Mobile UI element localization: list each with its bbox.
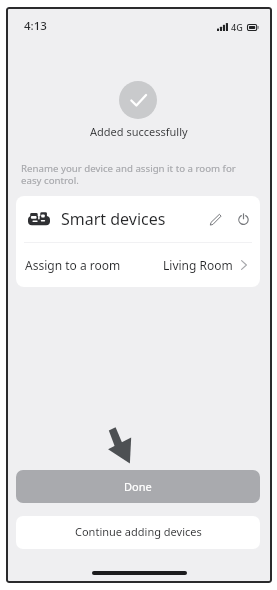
staticText: 4:13: [24, 18, 47, 34]
button[interactable]: Power: [234, 210, 252, 228]
button[interactable]: Assign to a room: [16, 243, 260, 287]
button[interactable]: Smart devices: [16, 196, 260, 242]
staticText: Living Room: [163, 257, 233, 273]
staticText: Done: [124, 479, 152, 494]
button[interactable]: Rename device: [206, 210, 224, 228]
button[interactable]: Continue adding devices: [16, 516, 260, 549]
staticText: Added successfully: [90, 124, 188, 139]
staticText: Rename your device and assign it to a ro…: [21, 162, 247, 186]
staticText: Continue adding devices: [75, 524, 202, 539]
staticText: 4G: [231, 21, 243, 33]
staticText: Assign to a room: [25, 257, 121, 273]
button[interactable]: Done: [16, 470, 260, 503]
staticText: Smart devices: [61, 208, 166, 230]
